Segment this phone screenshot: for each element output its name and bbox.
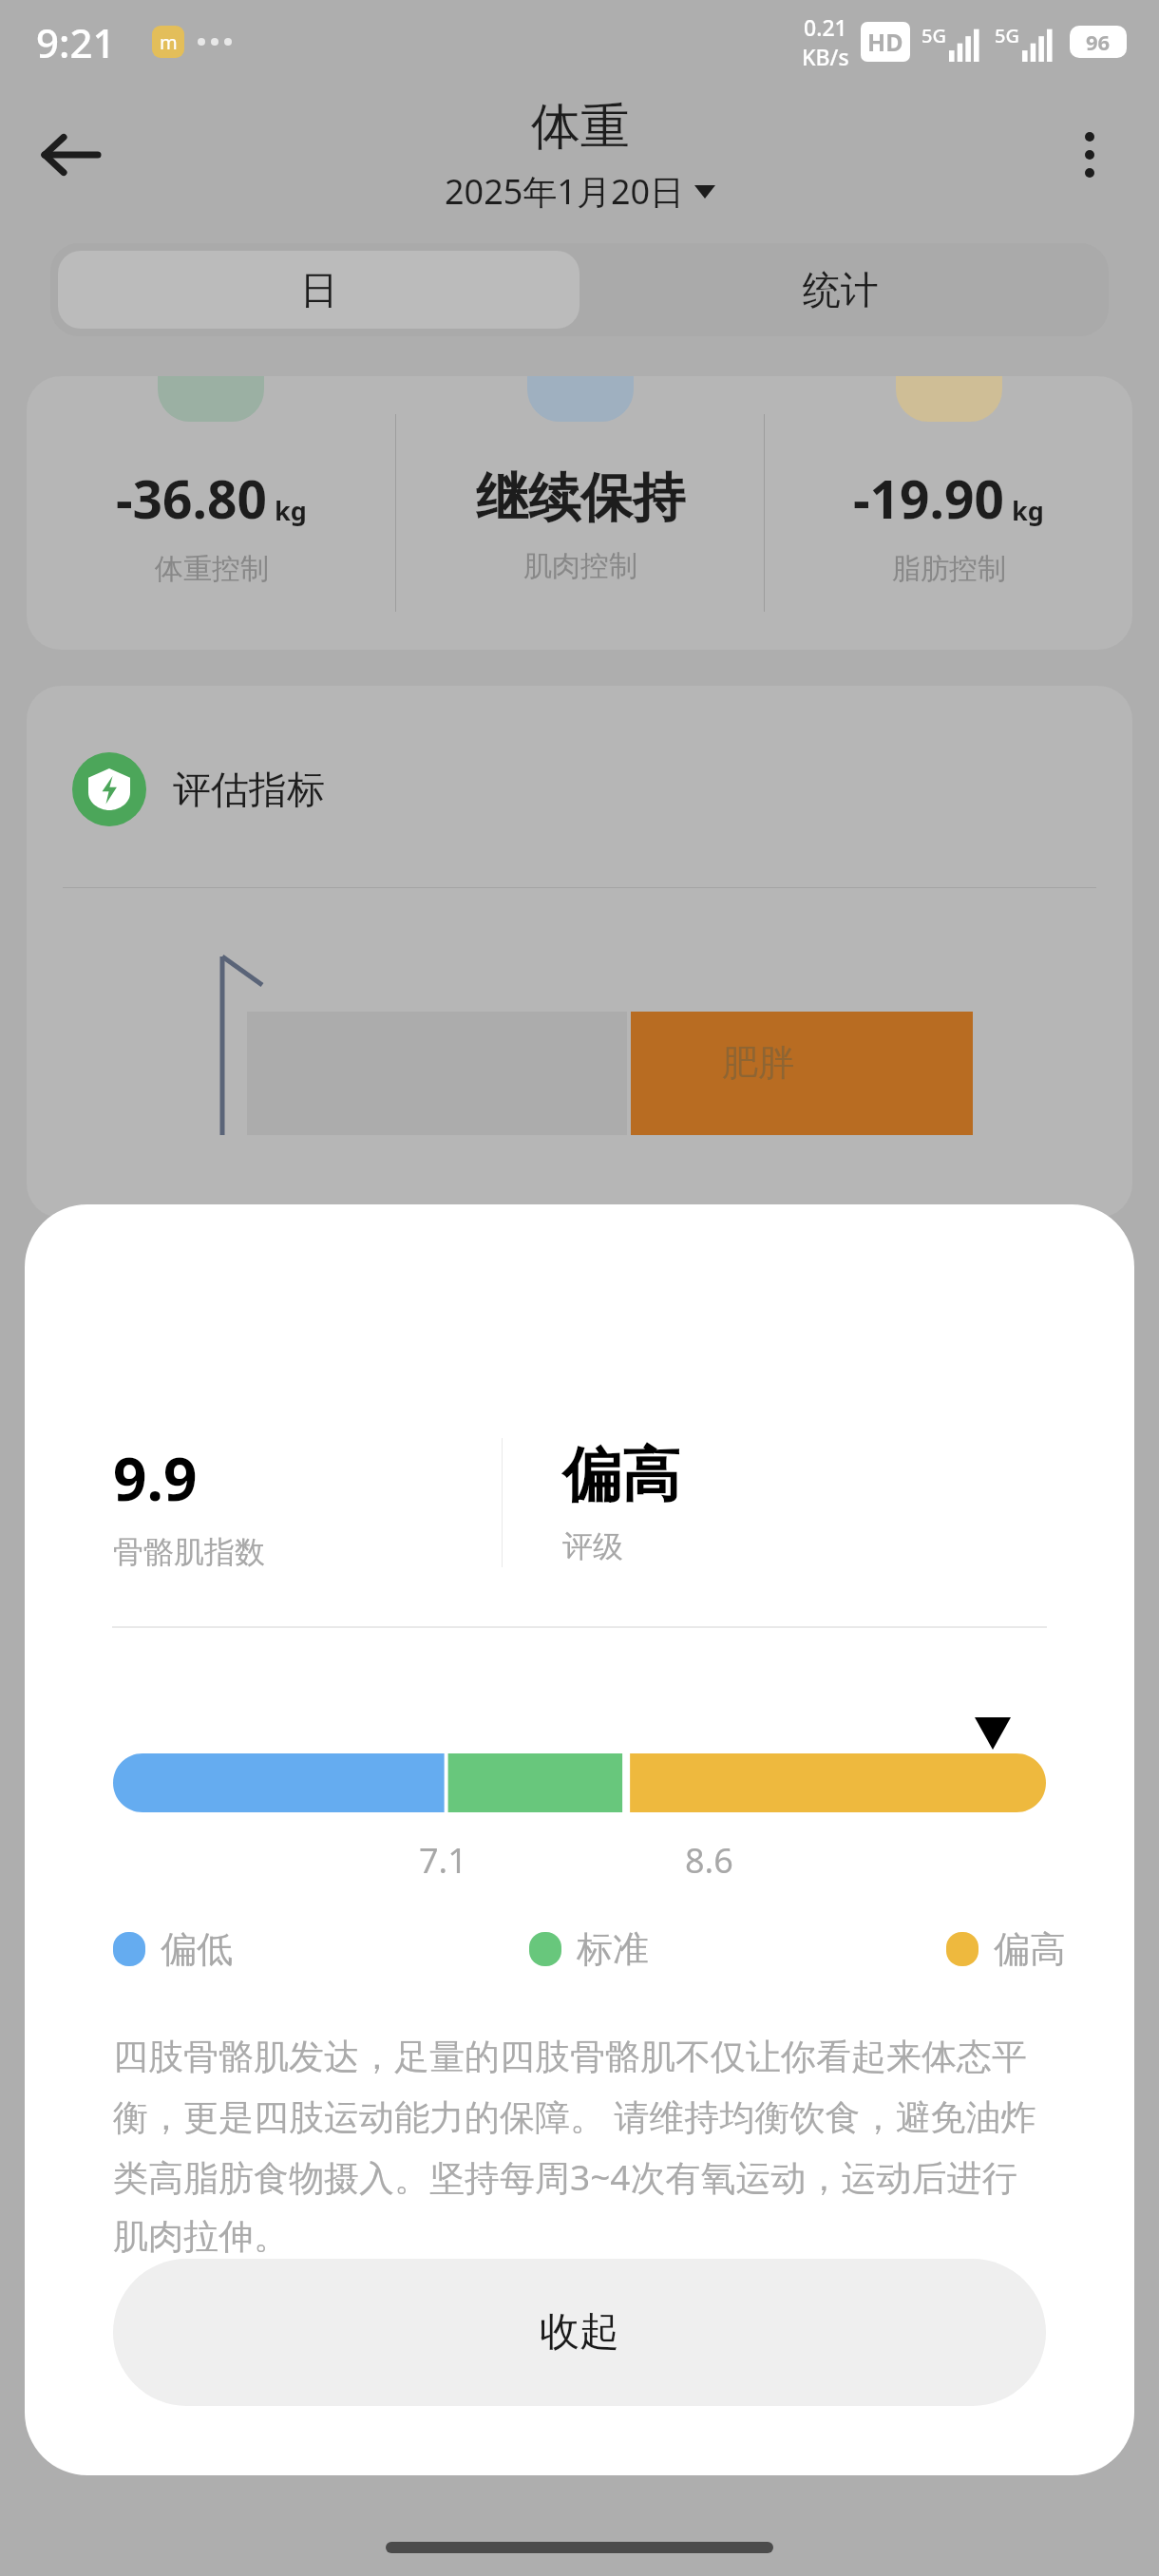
staticText: 9:21: [36, 15, 116, 69]
staticText: m: [160, 29, 178, 55]
staticText: 偏低: [161, 1926, 233, 1972]
staticText: kg: [1012, 493, 1044, 528]
staticText: 四肢骨骼肌发达，足量的四肢骨骼肌不仅让你看起来体态平衡，更是四肢运动能力的保障。…: [113, 2035, 1046, 2259]
staticText: 5G: [995, 23, 1019, 48]
button[interactable]: 收起: [113, 2259, 1046, 2406]
staticText: 脂肪控制: [892, 551, 1006, 587]
staticText: 7.1: [419, 1837, 467, 1884]
staticText: -19.90: [853, 463, 1004, 534]
staticText: 9.9: [113, 1438, 198, 1518]
staticText: 偏高: [562, 1438, 680, 1512]
button[interactable]: Back: [25, 109, 116, 200]
button[interactable]: -36.80: [27, 376, 1132, 650]
button[interactable]: More options: [1047, 112, 1132, 198]
staticText: 继续保持: [476, 465, 685, 531]
button[interactable]: 日: [58, 251, 579, 329]
staticText: 8.6: [685, 1837, 733, 1884]
staticText: kg: [275, 493, 307, 528]
staticText: 日: [300, 266, 338, 313]
staticText: 5G: [921, 23, 946, 48]
staticText: 2025年1月20日: [445, 168, 685, 215]
staticText: HD: [867, 26, 903, 58]
staticText: 骨骼肌指数: [113, 1533, 265, 1567]
staticText: 评估指标: [173, 766, 325, 813]
staticText: -36.80: [116, 463, 267, 534]
staticText: KB/s: [802, 42, 849, 71]
staticText: 肌肉控制: [523, 548, 637, 584]
staticText: 统计: [803, 266, 879, 313]
button[interactable]: 统计: [579, 251, 1101, 329]
staticText: 评级: [562, 1527, 623, 1565]
staticText: 偏高: [994, 1926, 1066, 1972]
staticText: 体重控制: [155, 551, 269, 587]
button[interactable]: 2025年1月20日: [445, 168, 715, 215]
staticText: 体重: [531, 96, 630, 159]
staticText: 96: [1086, 28, 1111, 56]
staticText: 收起: [540, 2307, 619, 2358]
staticText: 肥胖: [722, 1040, 794, 1086]
staticText: 标准: [577, 1926, 649, 1972]
staticText: 0.21: [804, 12, 847, 42]
